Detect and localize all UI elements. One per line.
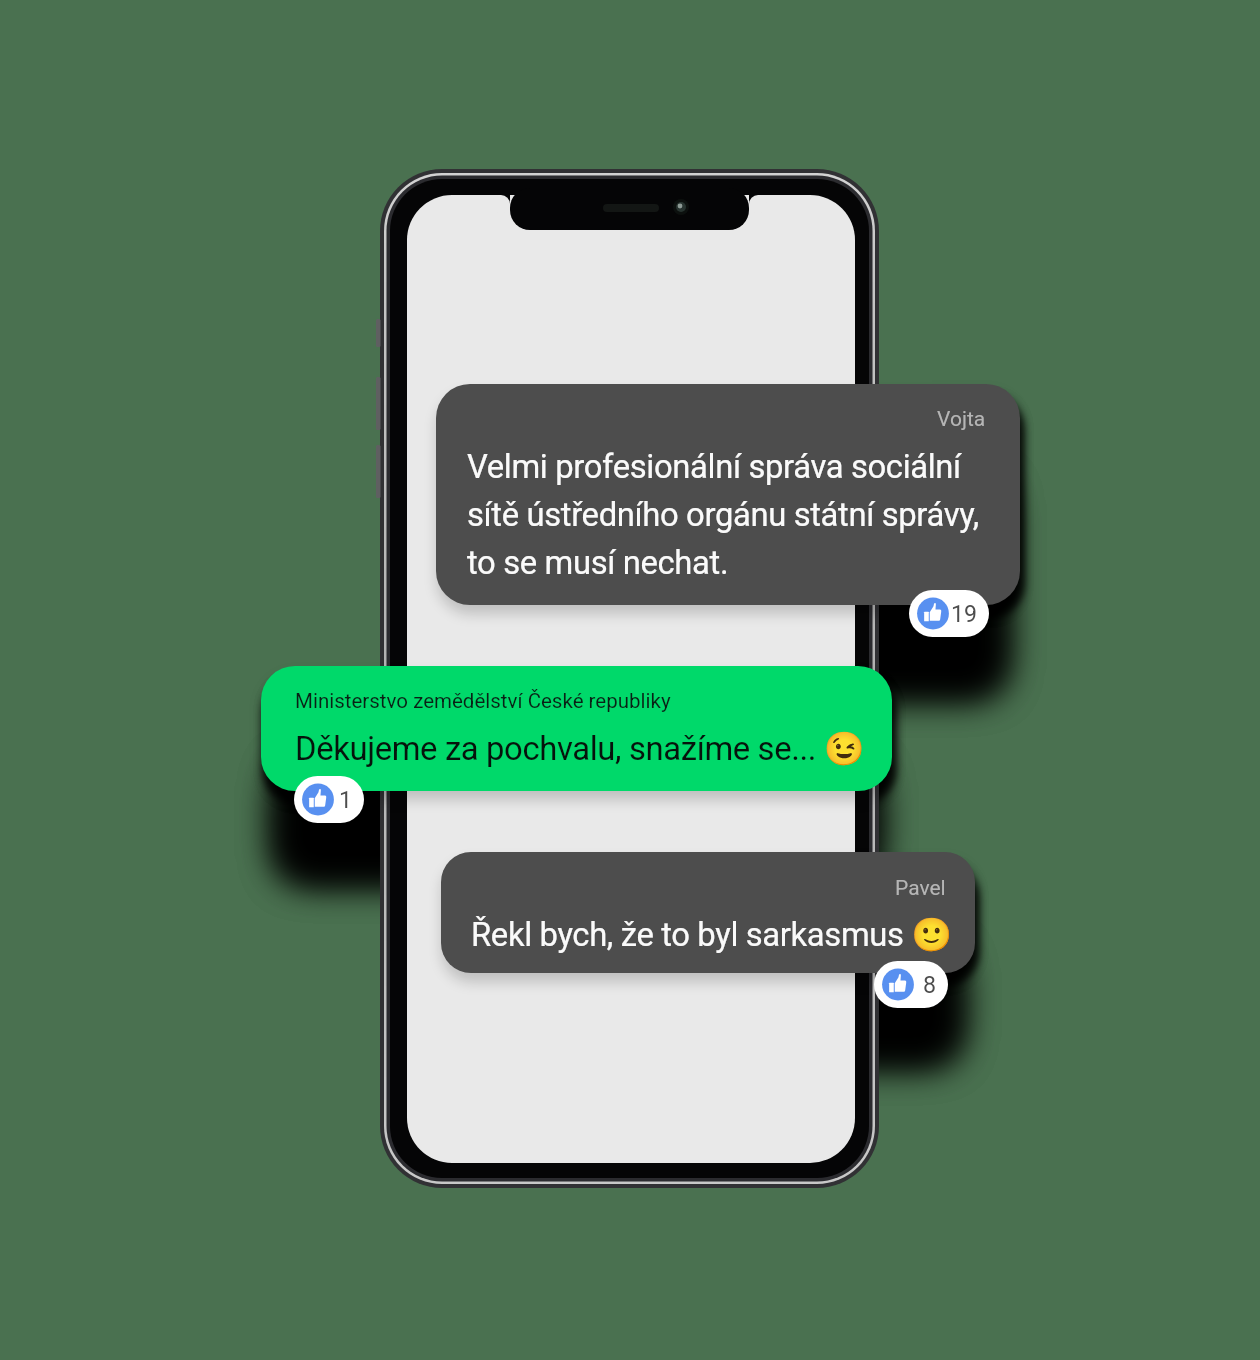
button[interactable]: Vojta bbox=[436, 384, 1020, 605]
staticText: Ministerstvo zemědělství České republiky bbox=[295, 689, 671, 713]
button[interactable]: Like 19 bbox=[909, 590, 989, 637]
staticText: Řekl bych, že to byl sarkasmus 🙂 bbox=[471, 916, 952, 954]
button[interactable]: Pavel bbox=[441, 852, 975, 973]
button[interactable]: Ministerstvo zemědělství České republiky bbox=[261, 666, 892, 791]
staticText: Vojta bbox=[937, 407, 986, 432]
staticText: Pavel bbox=[895, 876, 946, 901]
staticText: Velmi profesionální správa sociální sítě… bbox=[467, 448, 1002, 582]
button[interactable]: Like 8 bbox=[874, 961, 948, 1008]
button[interactable]: Like 1 bbox=[294, 776, 364, 823]
staticText: 8 bbox=[923, 971, 937, 998]
staticText: Děkujeme za pochvalu, snažíme se... 😉 bbox=[295, 730, 865, 768]
staticText: 1 bbox=[339, 786, 353, 813]
staticText: 19 bbox=[951, 600, 978, 627]
